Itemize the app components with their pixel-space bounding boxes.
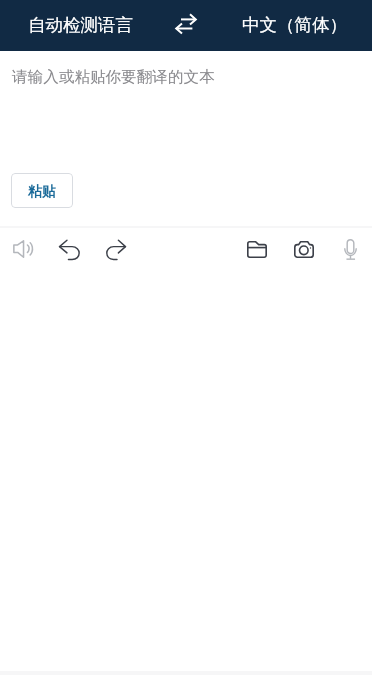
button[interactable]: 自动检测语言 bbox=[0, 0, 160, 51]
button[interactable]: Swap languages bbox=[160, 0, 211, 51]
button[interactable]: 粘贴 bbox=[11, 173, 73, 208]
button[interactable]: Redo bbox=[93, 227, 139, 273]
button[interactable]: Voice input bbox=[331, 226, 370, 273]
button[interactable]: Camera bbox=[281, 228, 327, 271]
staticText: 粘贴 bbox=[28, 183, 56, 201]
button[interactable]: Documents bbox=[234, 228, 280, 271]
staticText: 请输入或粘贴你要翻译的文本 bbox=[12, 67, 215, 87]
button[interactable]: Listen bbox=[0, 227, 45, 271]
button[interactable]: 中文（简体） bbox=[211, 0, 372, 51]
staticText: 自动检测语言 bbox=[28, 14, 133, 36]
button[interactable]: Undo bbox=[46, 227, 93, 273]
staticText: 中文（简体） bbox=[242, 14, 347, 36]
